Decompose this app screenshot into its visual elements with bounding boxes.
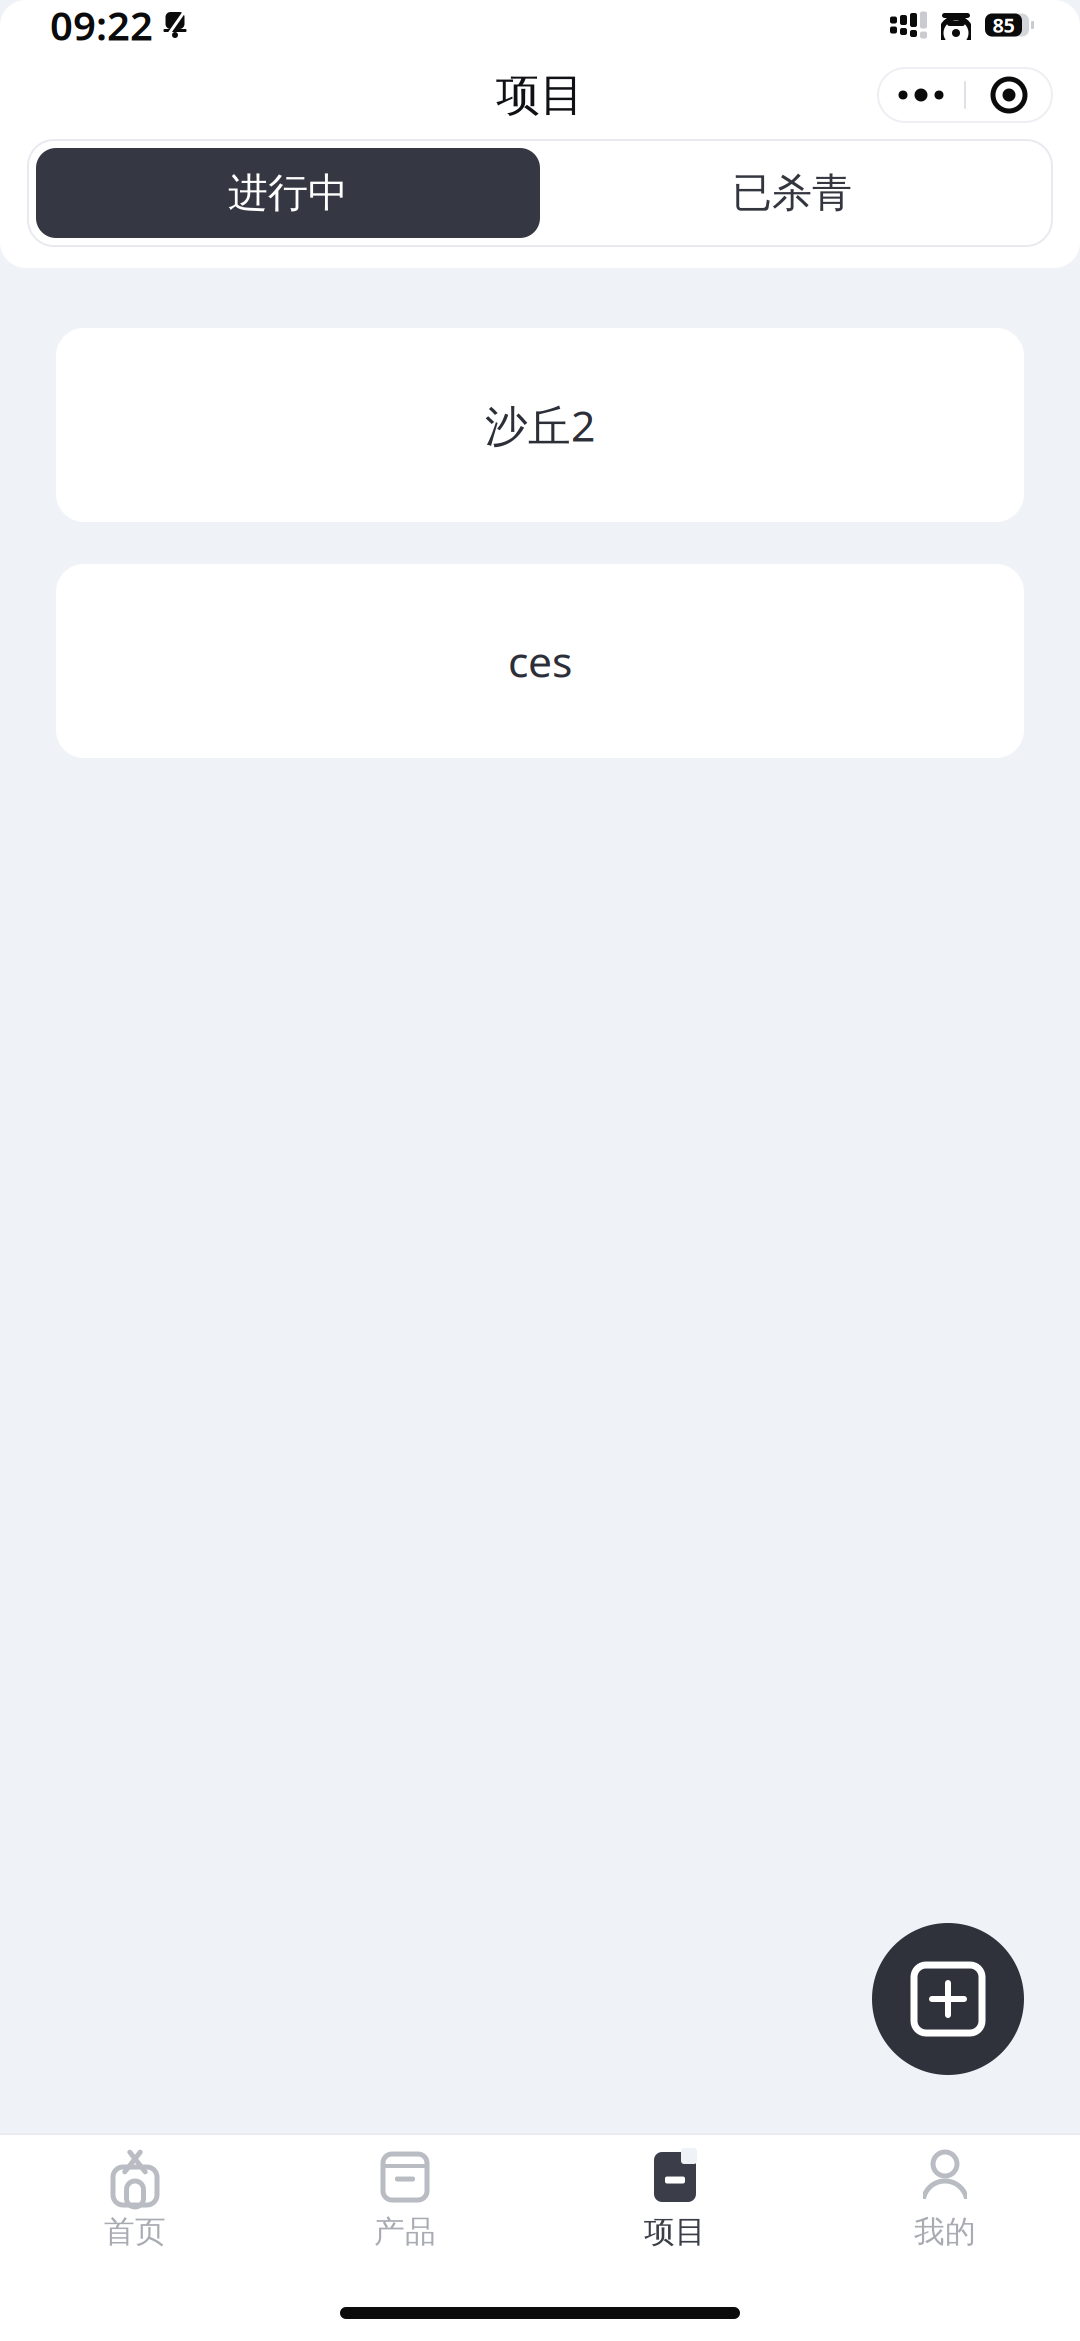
- staticText: 项目: [644, 2213, 706, 2251]
- button[interactable]: 已杀青: [540, 148, 1044, 238]
- button[interactable]: 沙丘2: [56, 328, 1024, 522]
- button[interactable]: 进行中: [36, 148, 540, 238]
- button[interactable]: 项目: [540, 2135, 810, 2261]
- button[interactable]: 首页: [0, 2135, 270, 2261]
- button[interactable]: 产品: [270, 2135, 540, 2261]
- staticText: 85: [992, 12, 1014, 38]
- button[interactable]: 更多: [878, 68, 964, 122]
- staticText: 我的: [914, 2213, 976, 2251]
- staticText: 进行中: [228, 168, 348, 217]
- button[interactable]: 新建项目: [872, 1923, 1024, 2075]
- staticText: 已杀青: [732, 168, 852, 217]
- button[interactable]: 我的: [810, 2135, 1080, 2261]
- staticText: 产品: [374, 2213, 436, 2251]
- staticText: 项目: [496, 68, 584, 122]
- button[interactable]: ces: [56, 564, 1024, 758]
- staticText: ces: [508, 633, 572, 689]
- staticText: 首页: [104, 2213, 166, 2251]
- button[interactable]: 胶囊按钮: [966, 68, 1052, 122]
- staticText: 09:22: [50, 0, 153, 51]
- staticText: 沙丘2: [485, 397, 595, 453]
